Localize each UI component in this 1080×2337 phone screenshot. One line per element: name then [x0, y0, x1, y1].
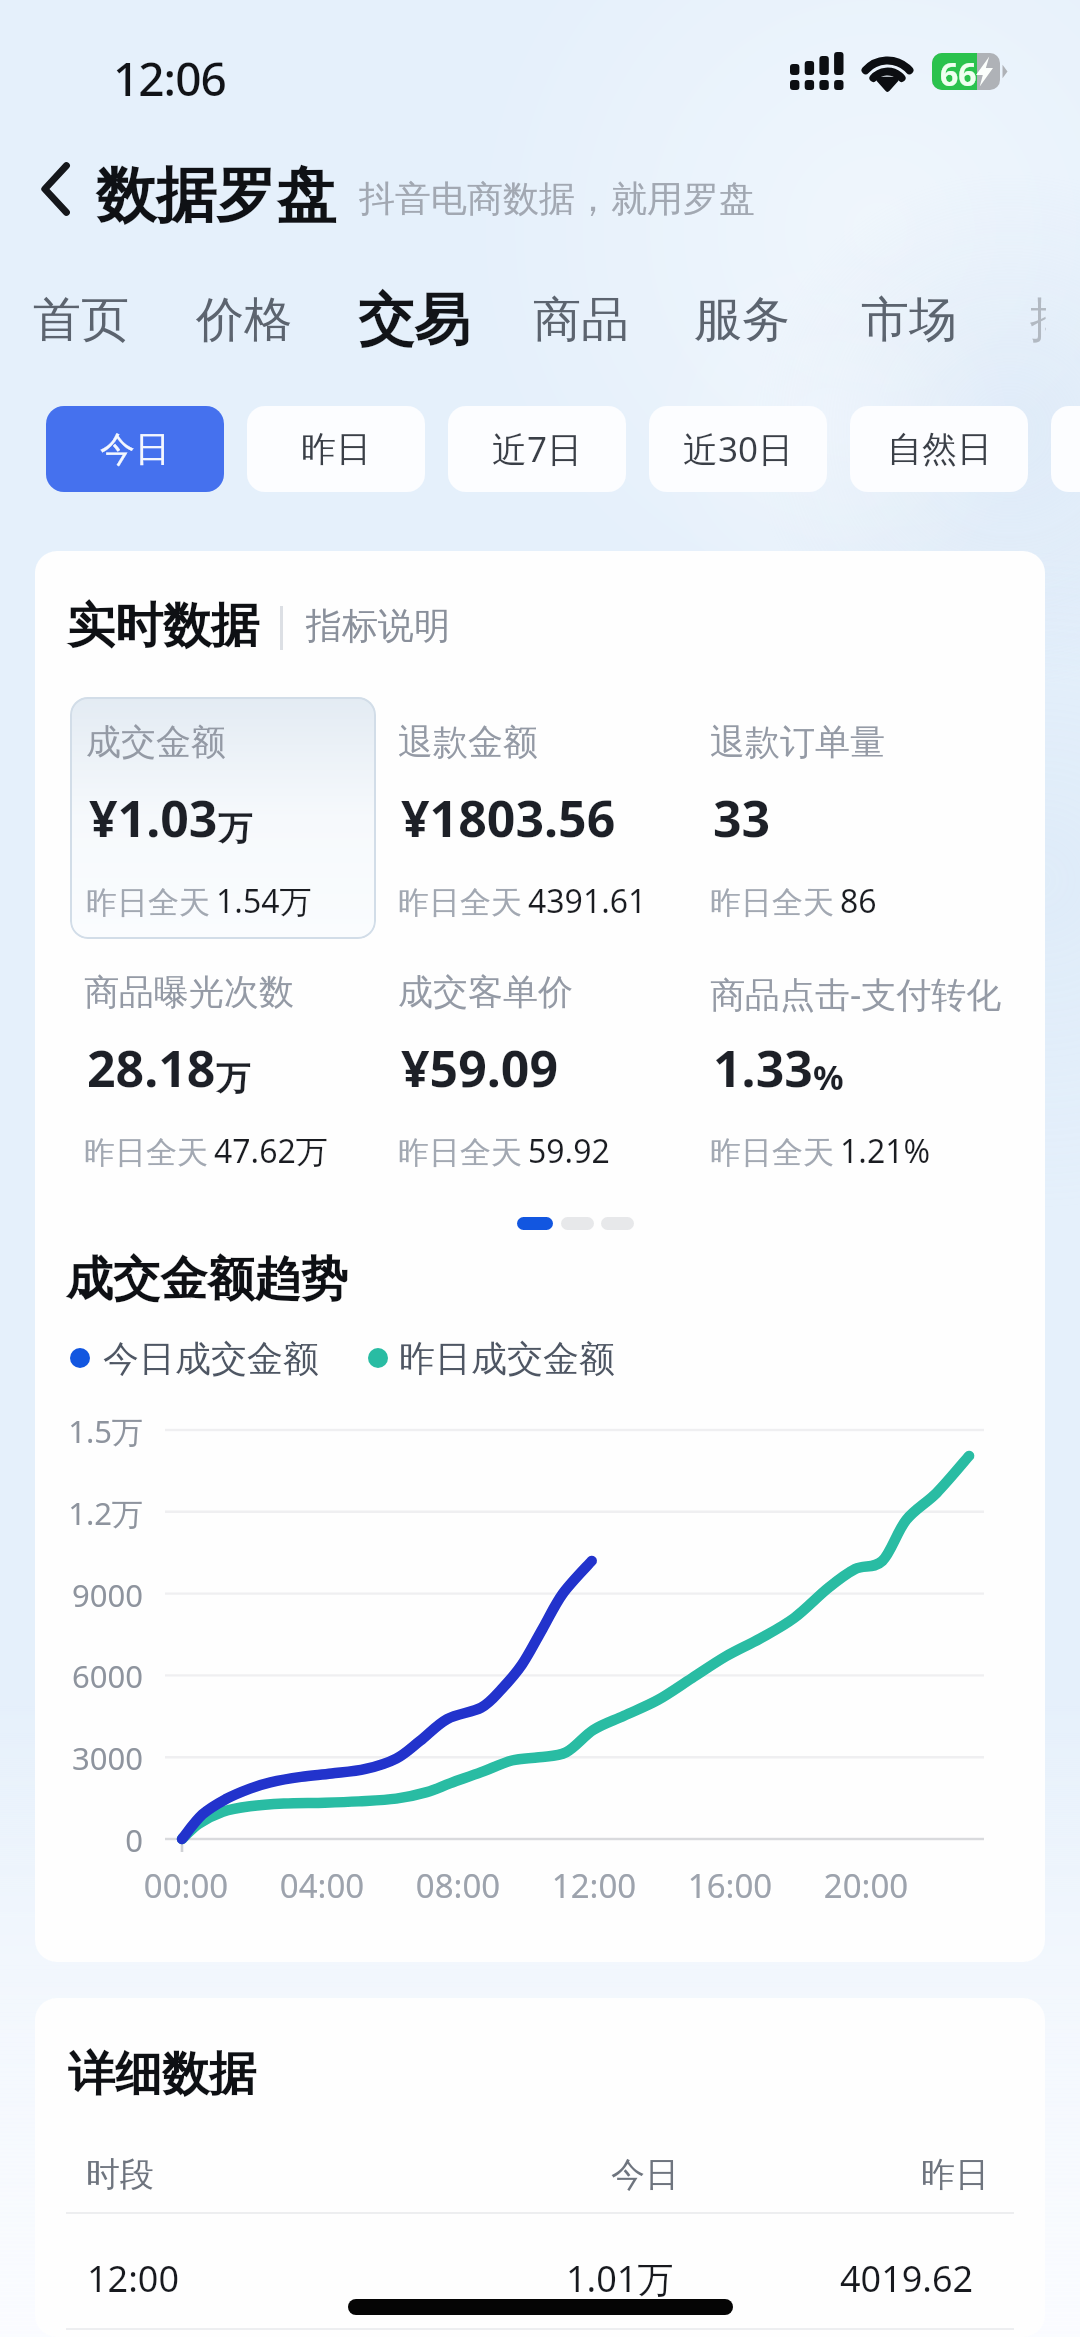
button[interactable]: 近7日: [448, 406, 626, 492]
staticText: 12:00: [524, 1863, 664, 1908]
staticText: ¥59.09: [401, 1034, 559, 1102]
staticText: %: [813, 1054, 844, 1100]
staticText: ¥1803.56: [401, 784, 616, 852]
staticText: 12:06: [113, 47, 226, 110]
staticText: 价格: [196, 290, 292, 350]
staticText: 1.01万: [566, 2254, 674, 2303]
staticText: 详细数据: [68, 2045, 256, 2104]
staticText: 9000: [35, 1574, 143, 1616]
staticText: 指标说明: [306, 603, 450, 648]
staticText: 66: [940, 52, 977, 89]
staticText: 退款金额: [398, 720, 538, 764]
staticText: 排: [1030, 290, 1046, 350]
staticText: 1.33: [713, 1034, 813, 1102]
staticText: 1.21%: [840, 1129, 931, 1173]
staticText: 昨日全天: [398, 883, 522, 922]
staticText: 今日: [100, 427, 170, 471]
staticText: 昨日全天: [710, 1133, 834, 1172]
button[interactable]: 指标说明: [306, 603, 450, 648]
staticText: ¥1.03: [89, 784, 218, 852]
staticText: 数据罗盘: [96, 158, 336, 234]
button[interactable]: 昨日: [247, 406, 425, 492]
staticText: 服务: [694, 290, 790, 350]
staticText: 12:00: [87, 2254, 180, 2303]
staticText: 昨日全天: [86, 883, 210, 922]
staticText: 自然日: [887, 427, 992, 471]
staticText: 昨日全天: [398, 1133, 522, 1172]
staticText: 退款订单量: [710, 720, 885, 764]
button[interactable]: 服务: [664, 272, 820, 368]
button[interactable]: 自然日: [850, 406, 1028, 492]
staticText: 04:00: [252, 1863, 392, 1908]
staticText: 59.92: [528, 1129, 610, 1173]
staticText: 今日: [611, 2153, 679, 2196]
staticText: 今日成交金额: [103, 1336, 319, 1381]
staticText: 昨日: [301, 427, 371, 471]
staticText: 商品曝光次数: [84, 970, 294, 1014]
button[interactable]: 市场: [831, 272, 987, 368]
staticText: 4391.61: [528, 879, 647, 923]
staticText: 3000: [35, 1737, 143, 1779]
staticText: 0: [35, 1819, 143, 1861]
button[interactable]: 交易: [336, 272, 492, 368]
staticText: 00:00: [116, 1863, 256, 1908]
button[interactable]: 近30日: [649, 406, 827, 492]
staticText: 1.54万: [216, 879, 312, 923]
button[interactable]: 商品: [503, 272, 659, 368]
staticText: 08:00: [388, 1863, 528, 1908]
staticText: 成交客单价: [398, 970, 573, 1014]
staticText: 33: [713, 784, 771, 852]
staticText: 6000: [35, 1655, 143, 1697]
staticText: 28.18: [87, 1034, 216, 1102]
button[interactable]: 首页: [3, 272, 159, 368]
staticText: 成交金额趋势: [66, 1250, 348, 1309]
staticText: 昨日: [921, 2153, 989, 2196]
staticText: 16:00: [660, 1863, 800, 1908]
staticText: 商品: [533, 290, 629, 350]
staticText: 47.62万: [214, 1129, 328, 1173]
button[interactable]: 今日: [46, 406, 224, 492]
button[interactable]: 价格: [166, 272, 322, 368]
button[interactable]: Back: [18, 152, 92, 226]
staticText: 4019.62: [840, 2254, 974, 2303]
staticText: 市场: [861, 290, 957, 350]
staticText: 交易: [358, 285, 470, 356]
staticText: 近7日: [492, 425, 583, 473]
staticText: 昨日全天: [710, 883, 834, 922]
staticText: 近30日: [683, 425, 794, 473]
staticText: 万: [218, 807, 252, 850]
button[interactable]: [70, 697, 376, 939]
staticText: 时段: [86, 2153, 154, 2196]
staticText: 万: [216, 1057, 250, 1100]
staticText: 商品点击-支付转化: [710, 970, 1002, 1018]
staticText: 昨日成交金额: [399, 1336, 615, 1381]
staticText: 1.5万: [35, 1410, 143, 1452]
staticText: 1.2万: [35, 1492, 143, 1534]
staticText: 成交金额: [86, 720, 226, 764]
staticText: 86: [840, 879, 877, 923]
staticText: 实时数据: [67, 596, 259, 656]
button[interactable]: 排: [1030, 272, 1080, 368]
staticText: 昨日全天: [84, 1133, 208, 1172]
staticText: 首页: [33, 290, 129, 350]
staticText: 抖音电商数据，就用罗盘: [359, 176, 755, 221]
staticText: 20:00: [796, 1863, 936, 1908]
button[interactable]: 自定义: [1051, 406, 1080, 492]
